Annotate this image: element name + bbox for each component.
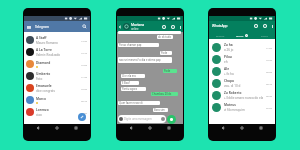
button[interactable]: Pilou	[209, 53, 275, 65]
staticText: Chapa	[224, 79, 234, 83]
button[interactable]: Back	[127, 124, 135, 131]
button[interactable]: WhatsApp	[209, 21, 275, 31]
staticText: Mauro Romano	[36, 41, 58, 45]
button[interactable]: More options	[178, 25, 182, 29]
button[interactable]: Chapa	[209, 77, 275, 89]
button[interactable]: Back	[219, 124, 227, 131]
staticText: Partiu agora	[122, 87, 138, 91]
staticText: Mariana	[131, 22, 145, 27]
button[interactable]: Recents	[257, 124, 265, 131]
button[interactable]: Recents	[72, 124, 80, 131]
staticText: A La Torre	[36, 48, 52, 52]
button[interactable]: Digite uma mensagem	[118, 115, 166, 123]
staticText: Pode	[164, 69, 171, 73]
staticText: Pode sim	[161, 51, 172, 55]
button[interactable]: Zu Roberto	[209, 89, 275, 101]
button[interactable]: Quer fazer nesse di	[118, 101, 160, 105]
staticText: online	[131, 27, 139, 31]
button[interactable]: Emanuele	[24, 82, 90, 94]
button[interactable]: Pode sim	[160, 51, 172, 55]
staticText: Zu ha	[224, 43, 233, 47]
button[interactable]: Marco	[24, 94, 90, 106]
staticText: vou. di 10 d	[224, 84, 241, 88]
button[interactable]: CALLS	[253, 31, 275, 39]
button[interactable]: Home	[146, 124, 154, 131]
staticText: 10:22	[81, 87, 88, 90]
staticText: Mateus	[224, 103, 236, 107]
button[interactable]: Back	[34, 124, 42, 131]
button[interactable]: STATUS	[209, 31, 231, 39]
button[interactable]: Posso chamar pap	[118, 43, 159, 47]
staticText: eh	[224, 60, 228, 64]
button[interactable]: Diamond	[24, 58, 90, 70]
button[interactable]: Send voice message	[167, 115, 176, 124]
button[interactable]: Search	[263, 24, 267, 28]
staticText: vi fib mesquim	[224, 108, 245, 112]
button[interactable]: Oi e ela era	[121, 74, 145, 78]
button[interactable]: Back	[117, 21, 183, 32]
staticText: Foto	[36, 77, 43, 81]
staticText: Chumbou 20 ds	[152, 92, 172, 96]
staticText: E Boa?	[122, 81, 130, 85]
staticText: 08:02	[81, 111, 88, 114]
staticText: 09:12	[266, 82, 273, 85]
staticText: Bora sim	[154, 108, 165, 112]
button[interactable]: Zu ha	[209, 41, 275, 53]
button[interactable]: Home	[238, 124, 246, 131]
staticText: Emanuele	[36, 84, 52, 88]
staticText: Zu Roberto	[224, 91, 242, 95]
button[interactable]	[118, 31, 181, 34]
staticText: 10:44	[266, 58, 273, 61]
staticText: Quer fazer nesse di	[119, 101, 143, 105]
staticText: Lorenzo	[36, 108, 49, 112]
staticText: CHATS	[236, 34, 244, 37]
staticText: + Eddie amaro nunca do ela	[224, 96, 264, 100]
button[interactable]: Umberto	[24, 70, 90, 82]
button[interactable]: CHATS	[231, 31, 253, 39]
staticText: STATUS	[216, 34, 225, 37]
staticText: dice congrats	[36, 89, 55, 93]
button[interactable]: Recents	[165, 124, 173, 131]
staticText: Diamond	[36, 61, 51, 65]
button[interactable]: Bora sim	[153, 108, 168, 112]
button[interactable]: Mateus	[209, 101, 275, 113]
staticText: Digite uma mensagem	[124, 117, 152, 121]
staticText: 13:10	[81, 51, 88, 54]
staticText: 07:55	[266, 106, 273, 109]
staticText: Marco	[36, 97, 46, 101]
staticText: WhatsApp	[212, 24, 228, 28]
staticText: 11:05	[266, 46, 273, 49]
button[interactable]: Menu	[24, 21, 90, 32]
button[interactable]: Home	[53, 124, 61, 131]
button[interactable]: Video call	[171, 25, 175, 29]
staticText: 3	[246, 34, 248, 37]
button[interactable]: A La Torre	[24, 46, 90, 58]
button[interactable]: Voice call	[162, 25, 166, 29]
button[interactable]: Pode	[163, 69, 177, 73]
button[interactable]: E Boa?	[121, 81, 139, 85]
staticText: 11:48	[81, 75, 88, 78]
button[interactable]: Camera	[254, 24, 258, 28]
staticText: 09:15	[81, 99, 88, 102]
staticText: 14:32	[81, 39, 88, 42]
staticText: CALLS	[261, 34, 268, 37]
staticText: 12:05	[81, 63, 88, 66]
staticText: ciao	[36, 113, 42, 117]
button[interactable]: More options	[270, 24, 274, 28]
button[interactable]: nao sei mesmo? o dia e otimo pap	[118, 57, 172, 63]
button[interactable]: Chumbou 20 ds	[151, 92, 178, 96]
staticText: 08:30	[266, 94, 273, 97]
button[interactable]: ok ok tudo bem	[157, 35, 173, 39]
staticText: Valmir: Realizado	[36, 53, 61, 57]
other: Search	[82, 24, 87, 29]
staticText: 09:59	[266, 70, 273, 73]
button[interactable]: Ale	[209, 65, 275, 77]
staticText: nao sei mesmo? o dia e otimo pap	[119, 58, 161, 62]
staticText: Telegram	[35, 25, 49, 29]
button[interactable]: Lorenzo	[24, 106, 90, 118]
button[interactable]: Partiu agora	[121, 87, 146, 91]
button[interactable]: New message	[78, 113, 86, 121]
button[interactable]: A Staff	[24, 34, 90, 46]
staticText: o 26 jo	[224, 48, 234, 52]
other: Back	[118, 25, 122, 29]
